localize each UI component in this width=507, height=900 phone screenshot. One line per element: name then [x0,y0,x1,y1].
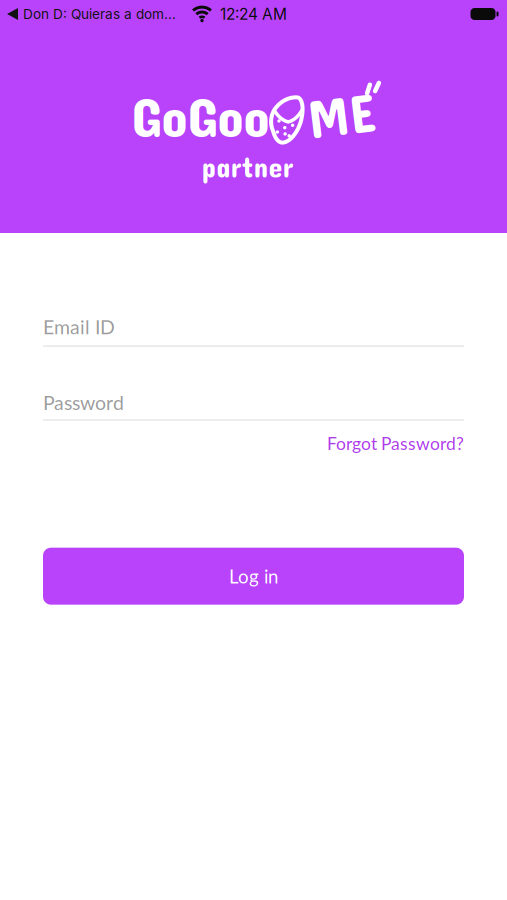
staticText: partner [201,150,293,183]
staticText: Email ID [43,315,115,338]
button[interactable]: Password [43,391,464,421]
button[interactable]: Forgot Password? [327,433,464,454]
staticText: ME [307,82,375,146]
staticText: Password [43,391,124,414]
button[interactable]: Email ID [43,315,464,347]
staticText: 12:24 AM [220,5,287,23]
staticText: Log in [229,565,278,587]
staticText: Don D: Quieras a dom... [23,6,176,22]
staticText: GoGoo [131,84,269,148]
staticText: Forgot Password? [327,433,464,454]
button[interactable]: Log in [43,548,464,605]
button[interactable]: Return to Don D [7,6,176,22]
